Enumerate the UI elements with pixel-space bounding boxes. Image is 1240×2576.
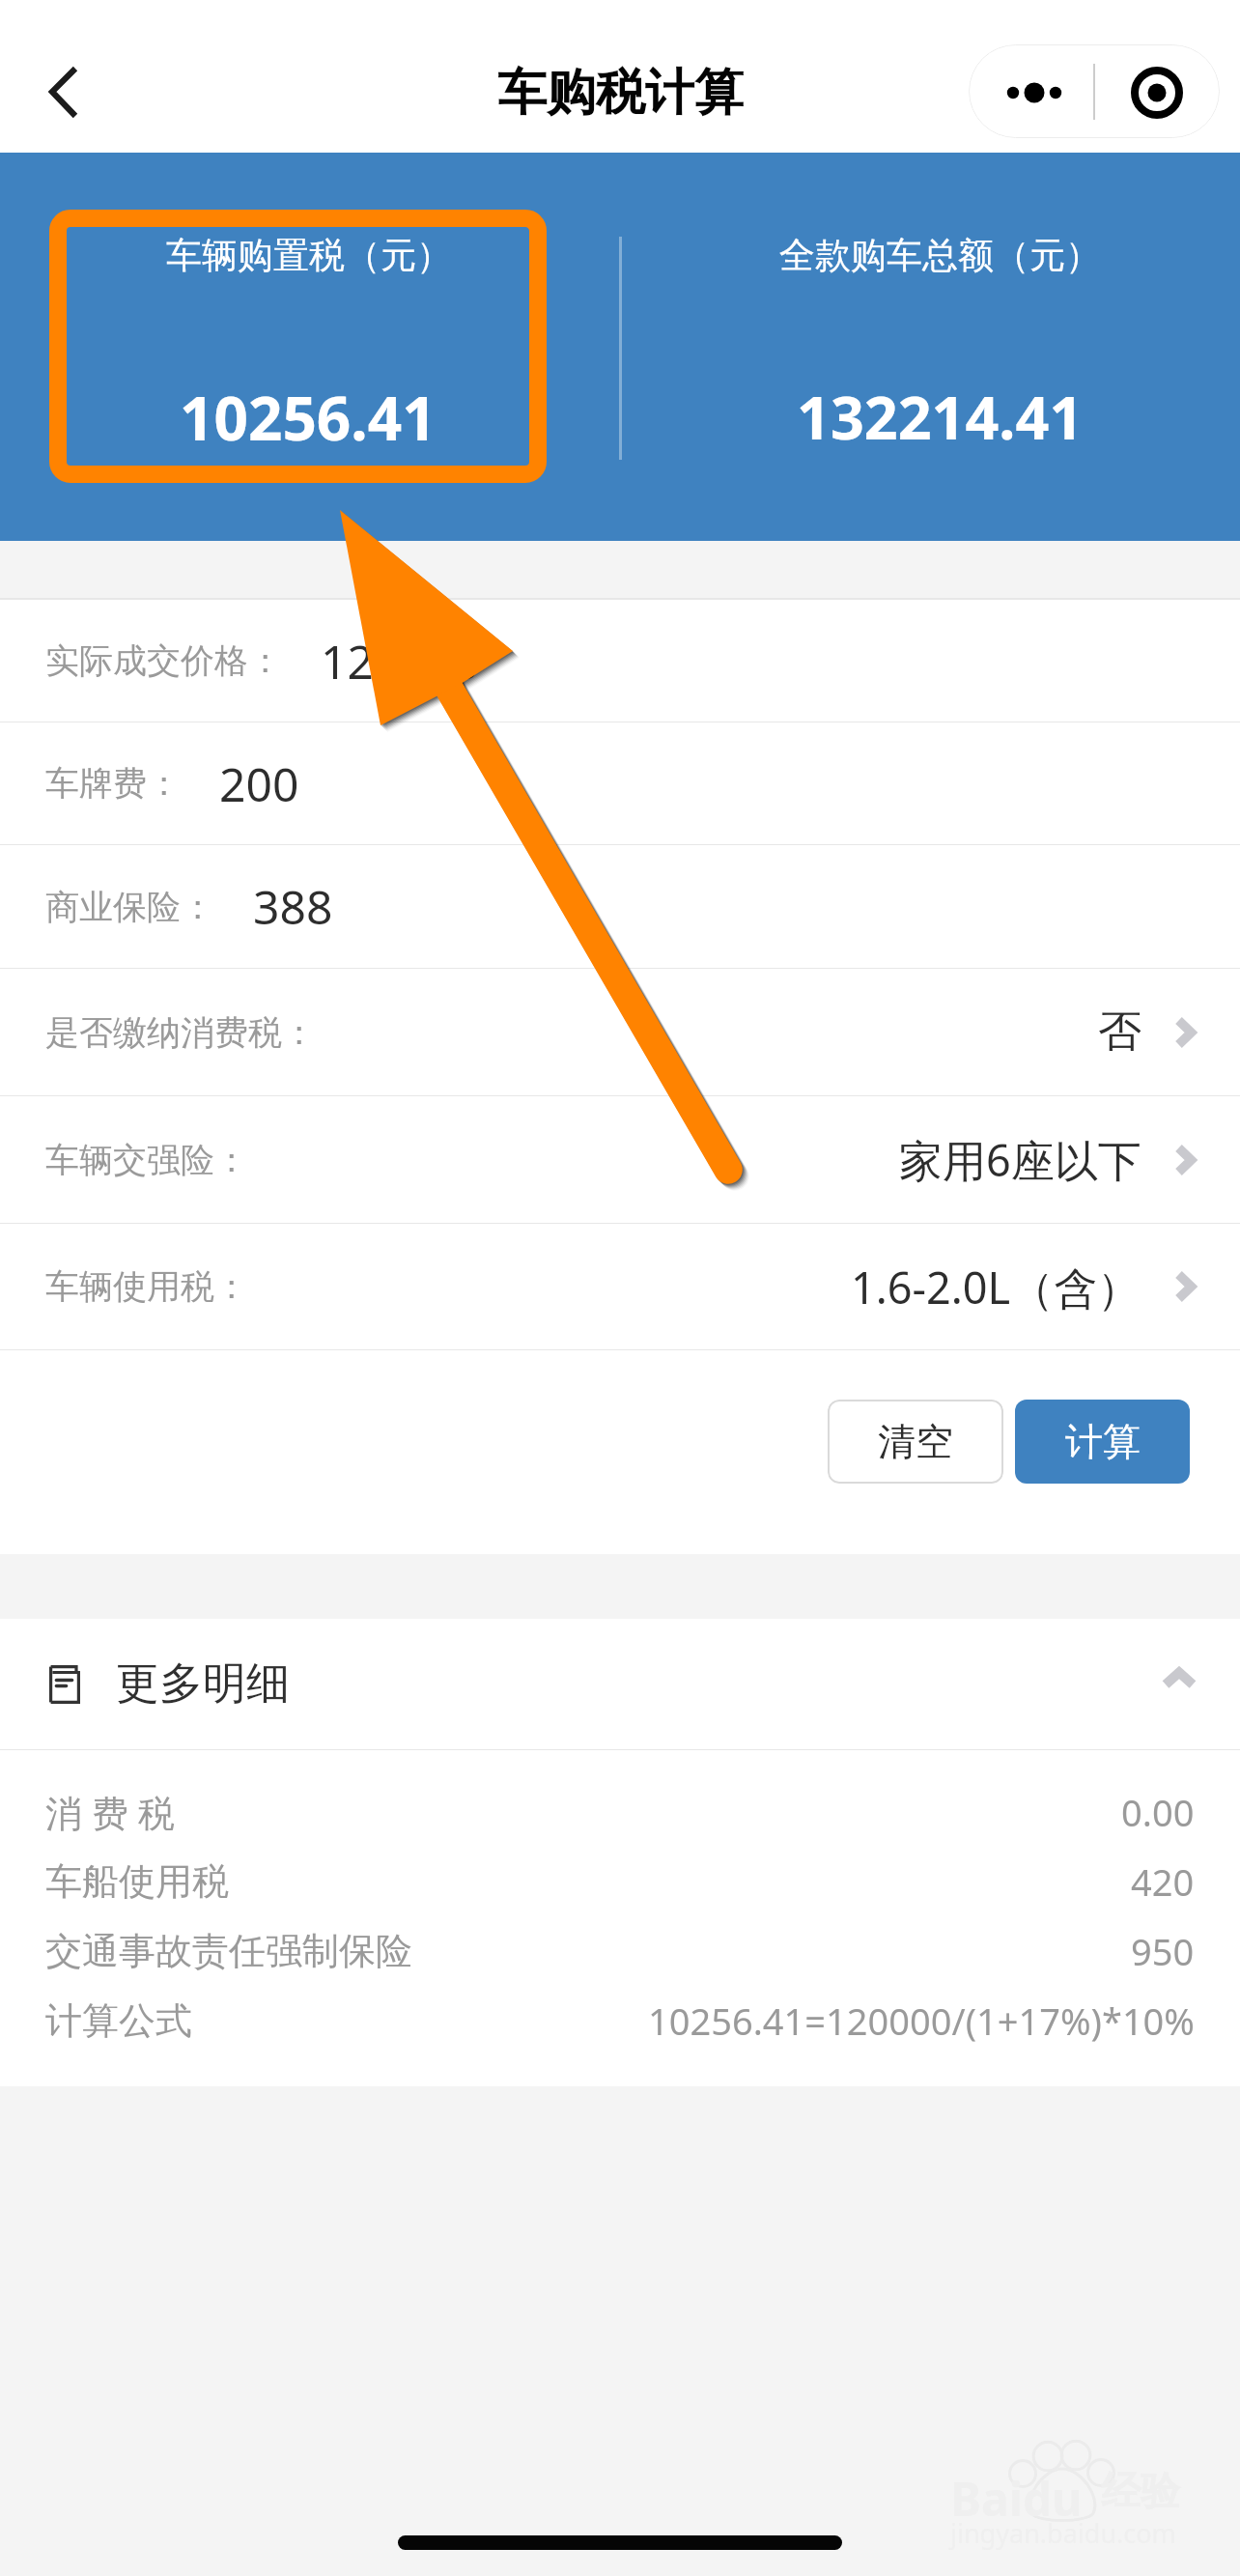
button[interactable]: Back xyxy=(10,48,97,135)
staticText: 420 xyxy=(1131,1856,1195,1907)
staticText: 120000 xyxy=(321,630,480,693)
staticText: 车牌费： xyxy=(45,762,181,805)
staticText: 车辆交强险： xyxy=(45,1139,248,1181)
button[interactable]: 车辆交强险： xyxy=(0,1096,1240,1223)
staticText: 10256.41 xyxy=(180,377,437,458)
staticText: 全款购车总额（元） xyxy=(779,233,1101,278)
staticText: 1.6-2.0L（含） xyxy=(851,1258,1141,1316)
button[interactable]: 是否缴纳消费税： xyxy=(0,969,1240,1095)
button[interactable]: 商业保险： xyxy=(0,845,1240,968)
button[interactable]: 清空 xyxy=(828,1400,1003,1484)
staticText: 清空 xyxy=(878,1418,953,1465)
staticText: 家用6座以下 xyxy=(899,1130,1141,1189)
button[interactable]: 车辆使用税： xyxy=(0,1224,1240,1349)
staticText: 计算 xyxy=(1065,1418,1141,1465)
staticText: 200 xyxy=(219,752,299,815)
staticText: 计算公式 xyxy=(45,1997,192,2044)
staticText: 是否缴纳消费税： xyxy=(45,1011,316,1054)
staticText: 商业保险： xyxy=(45,886,214,928)
staticText: 车辆使用税： xyxy=(45,1265,248,1308)
staticText: 388 xyxy=(253,875,333,938)
staticText: 车购税计算 xyxy=(497,62,744,124)
staticText: 车辆购置税（元） xyxy=(166,233,452,278)
staticText: 否 xyxy=(1098,1005,1141,1060)
staticText: 实际成交价格： xyxy=(45,639,282,682)
staticText: 132214.41 xyxy=(797,377,1084,457)
staticText: 0.00 xyxy=(1121,1787,1195,1837)
staticText: 消 费 税 xyxy=(45,1787,175,1837)
staticText: 10256.41=120000/(1+17%)*10% xyxy=(648,1996,1195,2046)
button[interactable]: 实际成交价格： xyxy=(0,600,1240,722)
button[interactable]: 更多明细 xyxy=(0,1619,1240,1749)
button[interactable]: 计算 xyxy=(1015,1400,1190,1484)
staticText: 车船使用税 xyxy=(45,1858,229,1905)
button[interactable]: 车牌费： xyxy=(0,722,1240,844)
staticText: 更多明细 xyxy=(116,1656,290,1712)
button[interactable]: Close mini program xyxy=(1095,44,1220,138)
staticText: 交通事故责任强制保险 xyxy=(45,1928,412,1974)
staticText: 950 xyxy=(1131,1926,1195,1976)
button[interactable]: More options xyxy=(969,44,1093,138)
